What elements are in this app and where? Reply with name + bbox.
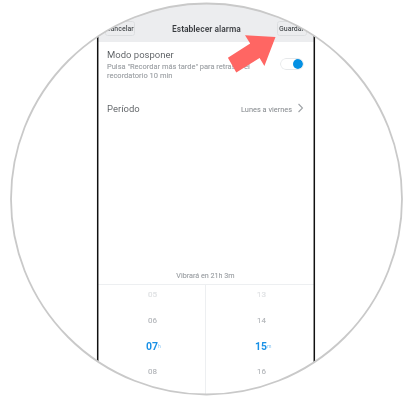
staticText: 05 (148, 290, 157, 299)
staticText: Guardar (279, 25, 305, 33)
button[interactable]: Período (97, 92, 314, 126)
staticText: 16 (257, 367, 266, 376)
staticText: 14 (257, 316, 266, 325)
button[interactable]: Guardar (277, 21, 307, 36)
button[interactable]: Cancelar (105, 21, 135, 36)
staticText: h (158, 343, 161, 349)
button[interactable]: Modo posponer (97, 42, 314, 86)
staticText: 08 (148, 367, 157, 376)
staticText: 13 (257, 290, 266, 299)
button[interactable]: Modo posponer (280, 58, 304, 70)
staticText: m (267, 343, 272, 349)
staticText: 06 (148, 316, 157, 325)
staticText: Cancelar (106, 25, 134, 33)
staticText: 07 (146, 340, 159, 352)
staticText: Pulsa "Recordar más tarde" para retrasar… (107, 62, 250, 80)
staticText: 15 (255, 340, 268, 352)
staticText: Establecer alarma (172, 24, 241, 34)
staticText: Modo posponer (107, 49, 174, 60)
staticText: Período (107, 103, 140, 114)
staticText: Lunes a viernes (241, 105, 293, 114)
staticText: Vibrará en 21h 3m (97, 271, 314, 279)
